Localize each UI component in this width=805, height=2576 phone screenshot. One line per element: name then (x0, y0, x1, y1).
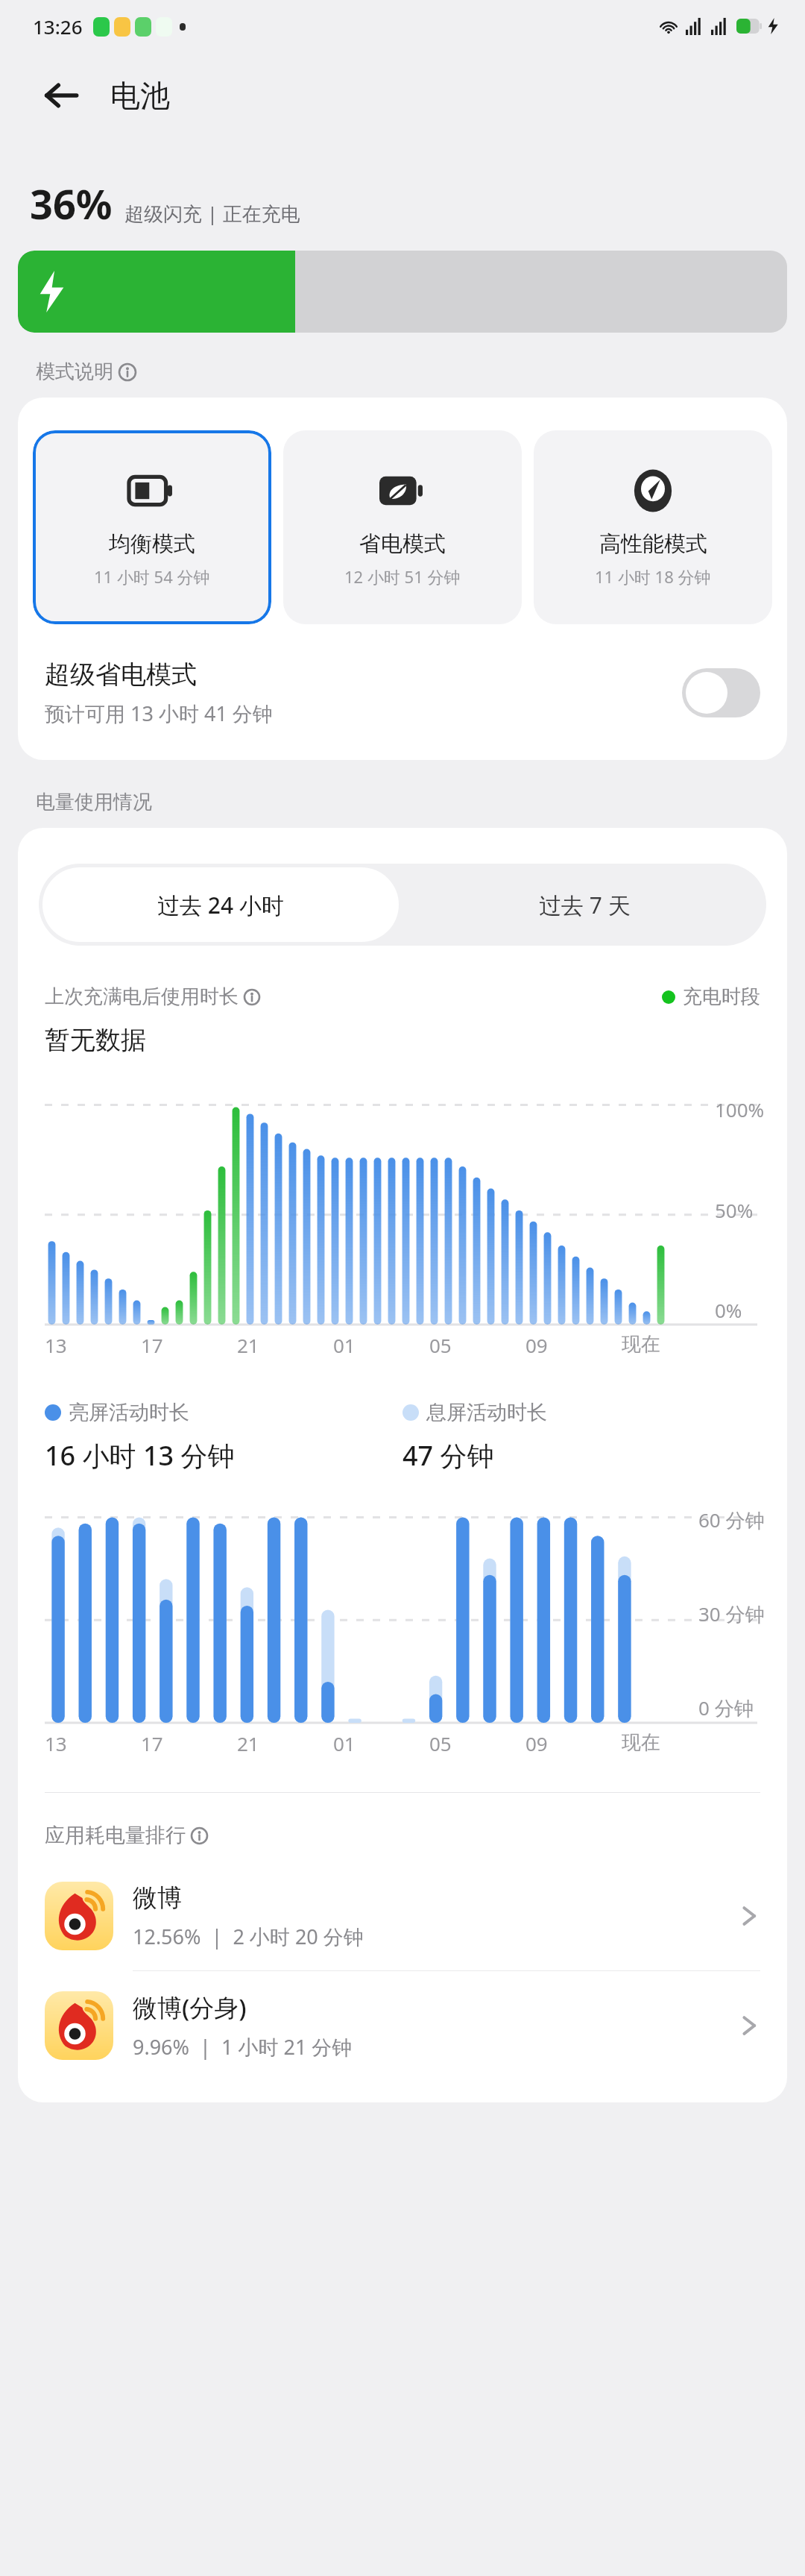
staticText: 均衡模式 (109, 530, 195, 558)
staticText: 微博 (133, 1882, 182, 1914)
staticText: 亮屏活动时长 (69, 1400, 189, 1425)
button[interactable]: 高性能模式 (534, 430, 772, 624)
staticText: 60 分钟 (698, 1507, 765, 1533)
staticText: 21 (237, 1730, 259, 1756)
staticText: 16 小时 13 分钟 (45, 1437, 235, 1474)
staticText: 应用耗电量排行 (45, 1823, 186, 1848)
staticText: 现在 (622, 1332, 660, 1357)
staticText: 09 (525, 1332, 548, 1358)
staticText: 13 (45, 1730, 67, 1756)
button[interactable]: 省电模式 (283, 430, 522, 624)
button[interactable]: Back (33, 67, 89, 124)
staticText: 微博(分身) (133, 1991, 247, 2024)
staticText: 预计可用 13 小时 41 分钟 (45, 700, 273, 727)
staticText: 01 (333, 1332, 356, 1358)
staticText: 电池 (110, 77, 170, 114)
staticText: 过去 7 天 (539, 890, 631, 920)
staticText: 充电时段 (683, 984, 760, 1009)
staticText: 13 (45, 1332, 67, 1358)
staticText: 过去 24 小时 (157, 890, 284, 920)
staticText: 12 小时 51 分钟 (344, 565, 461, 588)
staticText: 息屏活动时长 (426, 1400, 547, 1425)
staticText: 21 (237, 1332, 259, 1358)
button[interactable]: 均衡模式 (33, 430, 271, 624)
staticText: 50% (715, 1197, 754, 1223)
staticText: 模式说明 (36, 359, 113, 384)
staticText: 电量使用情况 (36, 790, 152, 814)
button[interactable]: 过去 7 天 (402, 864, 766, 946)
staticText: 高性能模式 (599, 530, 707, 558)
staticText: 0% (715, 1297, 742, 1323)
button[interactable]: 过去 24 小时 (42, 867, 399, 942)
staticText: 100% (715, 1096, 765, 1122)
staticText: 现在 (622, 1730, 660, 1755)
staticText: 05 (429, 1332, 452, 1358)
staticText: 12.56% | 2 小时 20 分钟 (133, 1923, 364, 1950)
staticText: 0 分钟 (698, 1694, 754, 1721)
staticText: 01 (333, 1730, 356, 1756)
staticText: 上次充满电后使用时长 (45, 984, 239, 1009)
staticText: 11 小时 54 分钟 (94, 565, 210, 588)
staticText: 36% (30, 176, 113, 231)
staticText: 11 小时 18 分钟 (595, 565, 711, 588)
staticText: 17 (141, 1332, 163, 1358)
staticText: 超级闪充 | 正在充电 (124, 200, 300, 227)
staticText: 暂无数据 (45, 1024, 146, 1056)
staticText: 9.96% | 1 小时 21 分钟 (133, 2033, 353, 2061)
button[interactable]: 超级省电模式开关 (682, 668, 760, 717)
button[interactable]: 微博 (18, 1862, 787, 1970)
staticText: 47 分钟 (402, 1437, 494, 1474)
staticText: 超级省电模式 (45, 659, 197, 691)
staticText: 省电模式 (359, 530, 446, 558)
staticText: 13:26 (33, 13, 83, 40)
button[interactable]: 超级省电模式 (18, 659, 787, 727)
staticText: 17 (141, 1730, 163, 1756)
button[interactable]: 微博(分身) (18, 1971, 787, 2080)
staticText: 30 分钟 (698, 1600, 765, 1627)
staticText: 05 (429, 1730, 452, 1756)
staticText: 09 (525, 1730, 548, 1756)
